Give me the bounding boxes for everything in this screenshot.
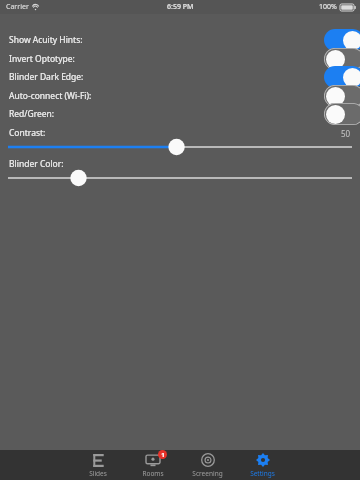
staticText: 6:59 PM bbox=[167, 2, 194, 12]
button[interactable]: Screening bbox=[180, 450, 235, 480]
button[interactable]: Settings bbox=[235, 450, 290, 480]
staticText: Auto-connect (Wi-Fi): bbox=[9, 90, 92, 102]
staticText: Contrast: bbox=[9, 127, 46, 139]
button[interactable]: Invert Optotype: bbox=[0, 48, 360, 70]
staticText: 1 bbox=[161, 451, 165, 459]
staticText: Blinder Dark Edge: bbox=[9, 71, 84, 83]
staticText: Red/Green: bbox=[9, 108, 55, 120]
button[interactable] bbox=[8, 168, 352, 188]
staticText: Screening bbox=[192, 469, 223, 478]
button[interactable]: Toggle on bbox=[324, 29, 360, 51]
staticText: Carrier bbox=[6, 2, 29, 12]
staticText: Settings bbox=[250, 469, 275, 478]
staticText: 50 bbox=[341, 128, 351, 139]
button[interactable]: Auto-connect (Wi-Fi): bbox=[0, 85, 360, 107]
button[interactable]: Toggle off bbox=[324, 103, 360, 125]
staticText: Blinder Color: bbox=[9, 158, 64, 170]
button[interactable]: Toggle off bbox=[324, 48, 360, 70]
staticText: Invert Optotype: bbox=[9, 53, 75, 65]
staticText: Slides bbox=[89, 469, 107, 478]
button[interactable]: Slides bbox=[70, 450, 125, 480]
button[interactable]: Blinder Dark Edge: bbox=[0, 66, 360, 88]
button[interactable] bbox=[8, 137, 352, 157]
staticText: Show Acuity Hints: bbox=[9, 34, 83, 46]
button[interactable]: Toggle off bbox=[324, 85, 360, 107]
staticText: 100% bbox=[319, 2, 337, 12]
button[interactable]: Toggle on bbox=[324, 66, 360, 88]
button[interactable]: Show Acuity Hints: bbox=[0, 29, 360, 51]
button[interactable]: Red/Green: bbox=[0, 103, 360, 125]
button[interactable]: 1 bbox=[125, 450, 180, 480]
staticText: Rooms bbox=[142, 469, 164, 478]
